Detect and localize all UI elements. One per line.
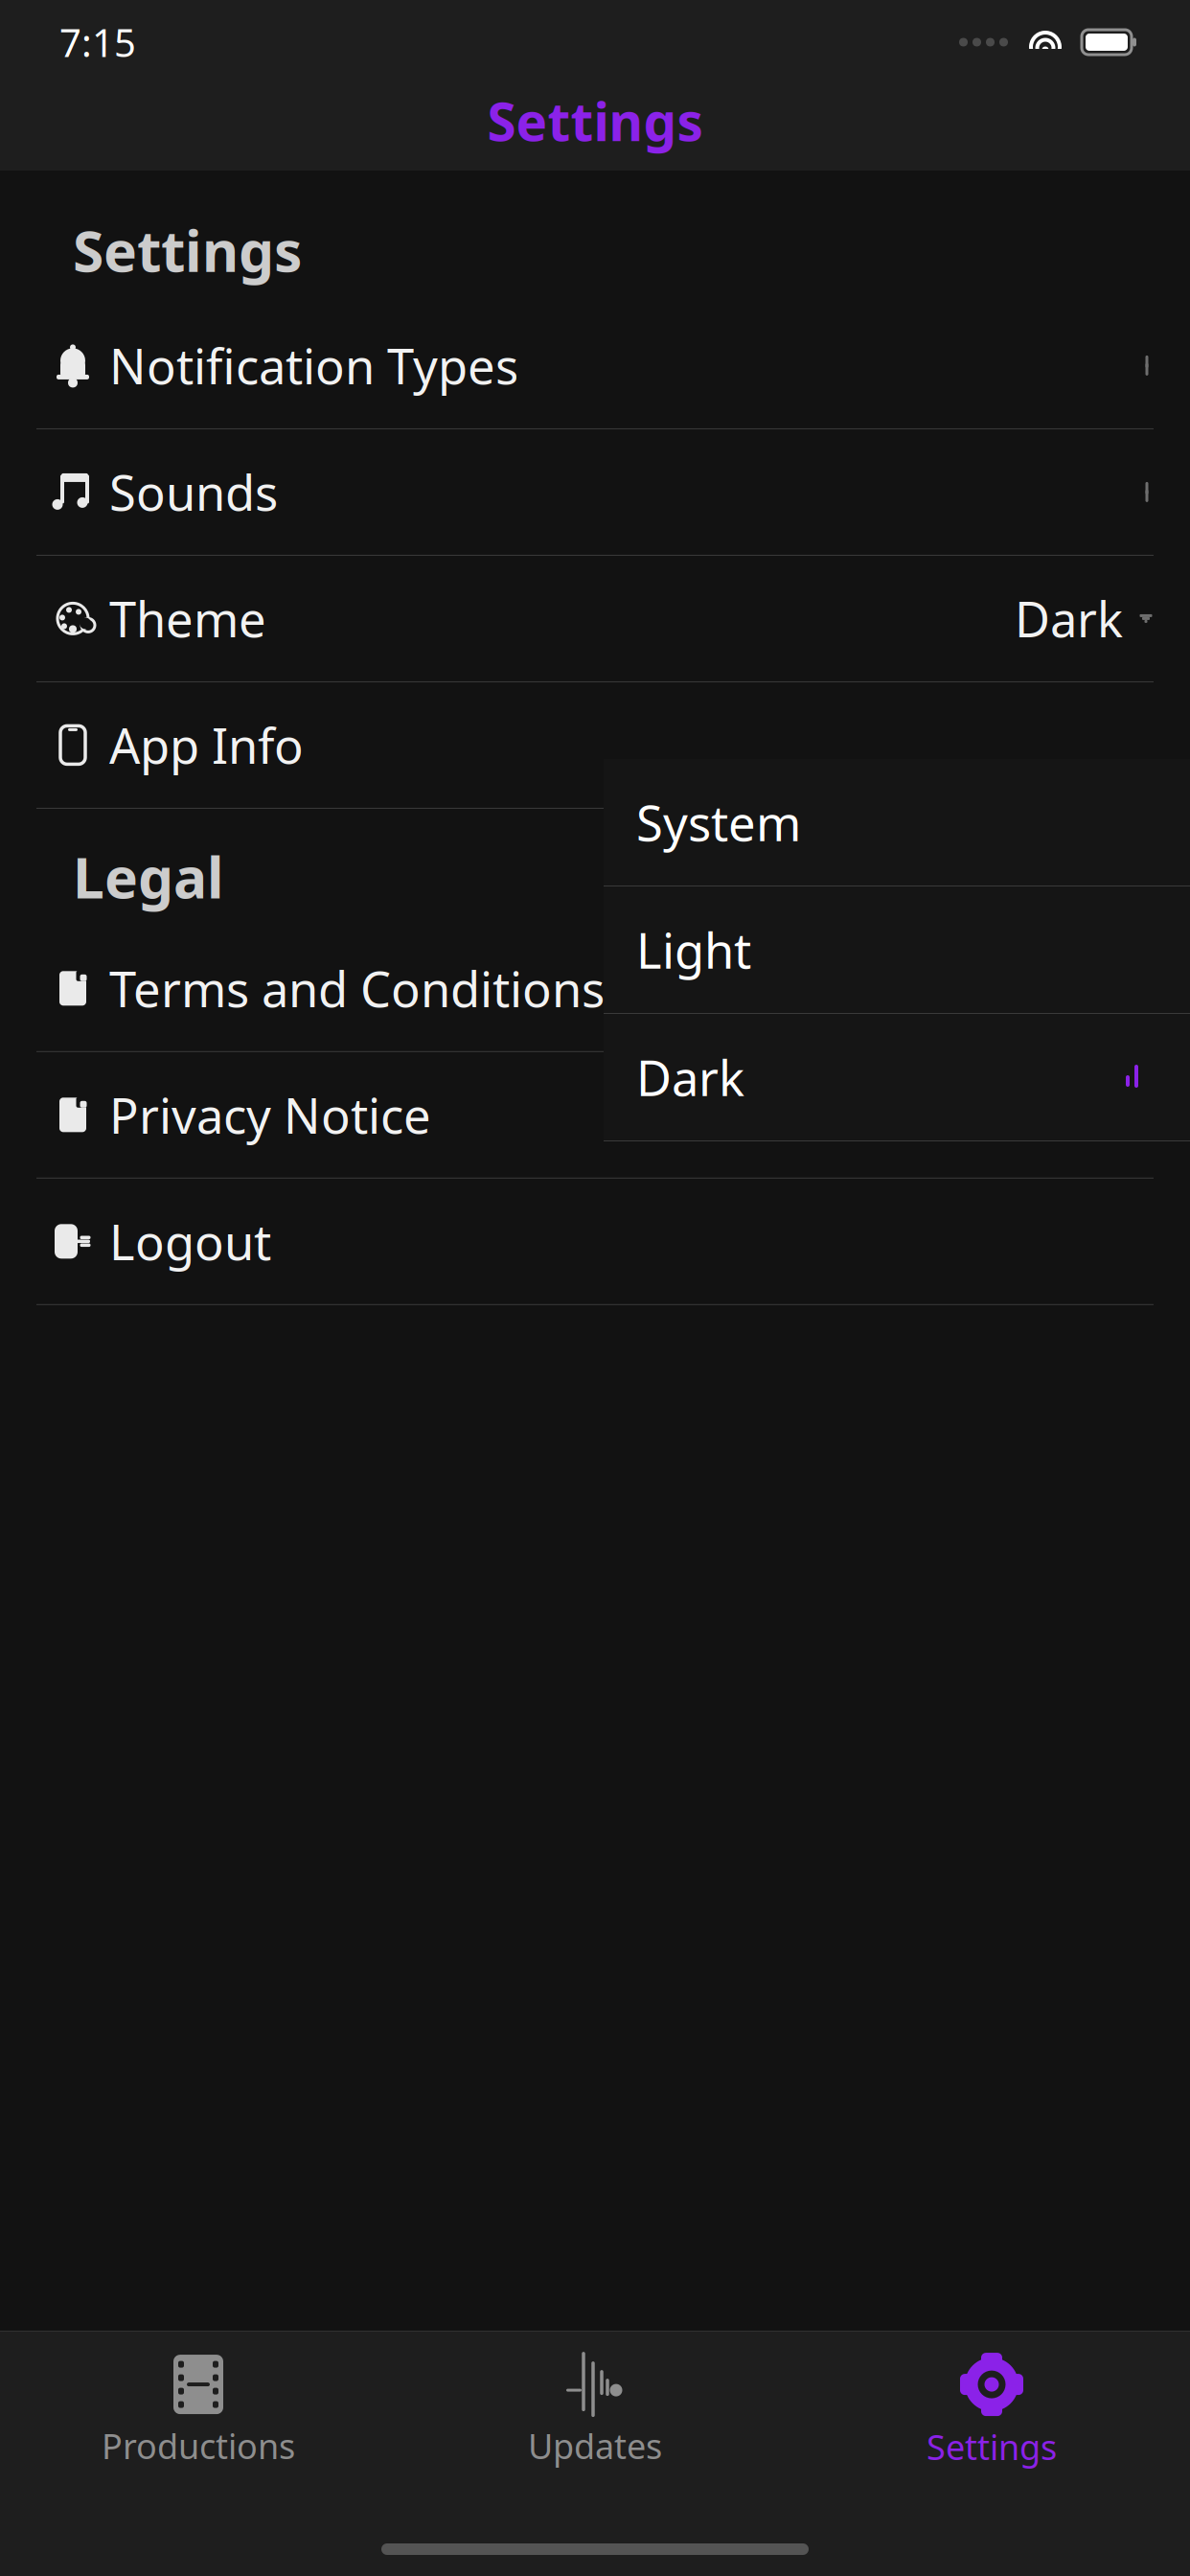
button[interactable]: Sounds [0, 429, 1190, 556]
staticText: Settings [73, 213, 302, 287]
staticText: Updates [528, 2423, 662, 2469]
staticText: App Info [109, 713, 304, 777]
staticText: Settings [927, 2424, 1057, 2470]
button[interactable]: Productions [0, 2349, 397, 2473]
staticText: Settings [487, 86, 703, 156]
staticText: Privacy Notice [109, 1083, 431, 1147]
staticText: Dark [1015, 586, 1123, 651]
staticText: Dark [636, 1045, 744, 1109]
button[interactable]: Terms and Conditions [0, 926, 1190, 1052]
button[interactable]: Privacy Notice [0, 1052, 1190, 1179]
button[interactable]: App Info [0, 682, 1190, 809]
button[interactable]: Dark [604, 1014, 1190, 1141]
staticText: Terms and Conditions [109, 956, 605, 1021]
staticText: Logout [109, 1209, 271, 1274]
button[interactable]: Theme [0, 556, 1190, 682]
staticText: Productions [102, 2423, 295, 2469]
button[interactable]: Settings [793, 2349, 1190, 2473]
button[interactable]: Logout [0, 1179, 1190, 1305]
staticText: Notification Types [109, 333, 518, 398]
staticText: Light [636, 918, 751, 982]
button[interactable]: Updates [397, 2349, 793, 2473]
staticText: Sounds [109, 460, 278, 524]
staticText: 7:15 [59, 17, 136, 68]
button[interactable]: Settings [487, 84, 703, 157]
button[interactable]: System [604, 759, 1190, 886]
staticText: Legal [73, 839, 223, 914]
staticText: System [636, 790, 801, 855]
button[interactable]: Light [604, 886, 1190, 1014]
button[interactable]: Notification Types [0, 303, 1190, 429]
staticText: Theme [109, 586, 266, 651]
